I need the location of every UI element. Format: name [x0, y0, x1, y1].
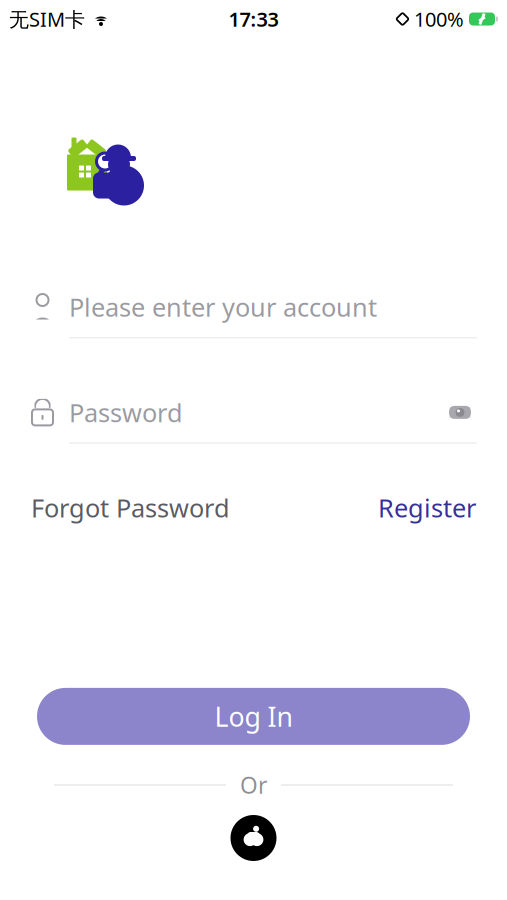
staticText: Password	[69, 396, 183, 429]
staticText: Or	[240, 770, 267, 800]
button[interactable]: Register	[378, 485, 476, 530]
staticText: Register	[378, 491, 476, 524]
staticText: 无SIM卡	[9, 6, 85, 32]
staticText: Please enter your account	[69, 290, 377, 324]
staticText: Forgot Password	[31, 491, 230, 524]
button[interactable]: Log In	[37, 688, 470, 745]
button[interactable]: Sign in with Apple	[230, 815, 276, 861]
button[interactable]: Forgot Password	[31, 485, 230, 530]
button[interactable]: Show password	[443, 395, 477, 429]
staticText: 17:33	[228, 6, 278, 32]
staticText: Log In	[214, 699, 292, 734]
staticText: 100%	[414, 6, 464, 32]
